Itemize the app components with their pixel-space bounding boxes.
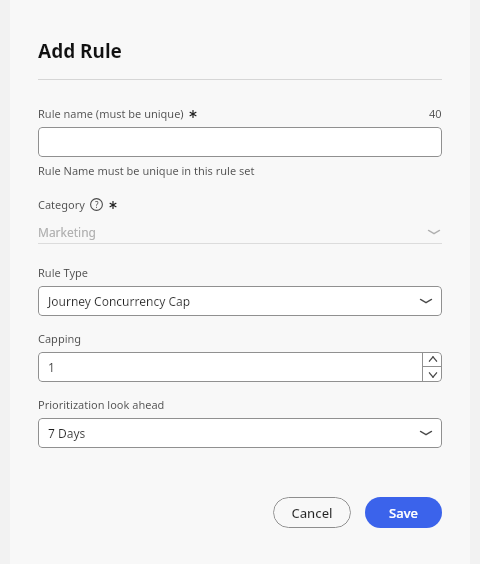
button[interactable]: Increase capping xyxy=(423,352,442,366)
staticText: Prioritization look ahead xyxy=(38,397,165,412)
button[interactable]: Marketing xyxy=(38,221,442,244)
button[interactable]: Save xyxy=(365,497,442,528)
staticText: Save xyxy=(389,504,418,522)
staticText: 40 xyxy=(429,106,442,121)
staticText: Marketing xyxy=(38,224,96,240)
staticText: Cancel xyxy=(291,504,333,522)
button[interactable]: Journey Concurrency Cap xyxy=(38,286,442,316)
button[interactable] xyxy=(38,127,442,157)
button[interactable]: 7 Days xyxy=(38,418,442,448)
staticText: Rule Name must be unique in this rule se… xyxy=(38,163,255,178)
staticText: 1 xyxy=(48,359,55,375)
staticText: Journey Concurrency Cap xyxy=(48,293,191,309)
button[interactable]: Cancel xyxy=(273,497,351,528)
staticText: Rule Type xyxy=(38,265,89,280)
staticText: Category xyxy=(38,197,85,212)
button[interactable]: 1 xyxy=(38,352,422,382)
staticText: 7 Days xyxy=(48,425,86,441)
button[interactable]: Help about Category xyxy=(90,198,103,211)
staticText: ? xyxy=(95,199,99,210)
button[interactable]: Decrease capping xyxy=(423,367,442,382)
staticText: Capping xyxy=(38,331,82,346)
staticText: Add Rule xyxy=(38,38,122,64)
staticText: Rule name (must be unique) xyxy=(38,106,184,121)
